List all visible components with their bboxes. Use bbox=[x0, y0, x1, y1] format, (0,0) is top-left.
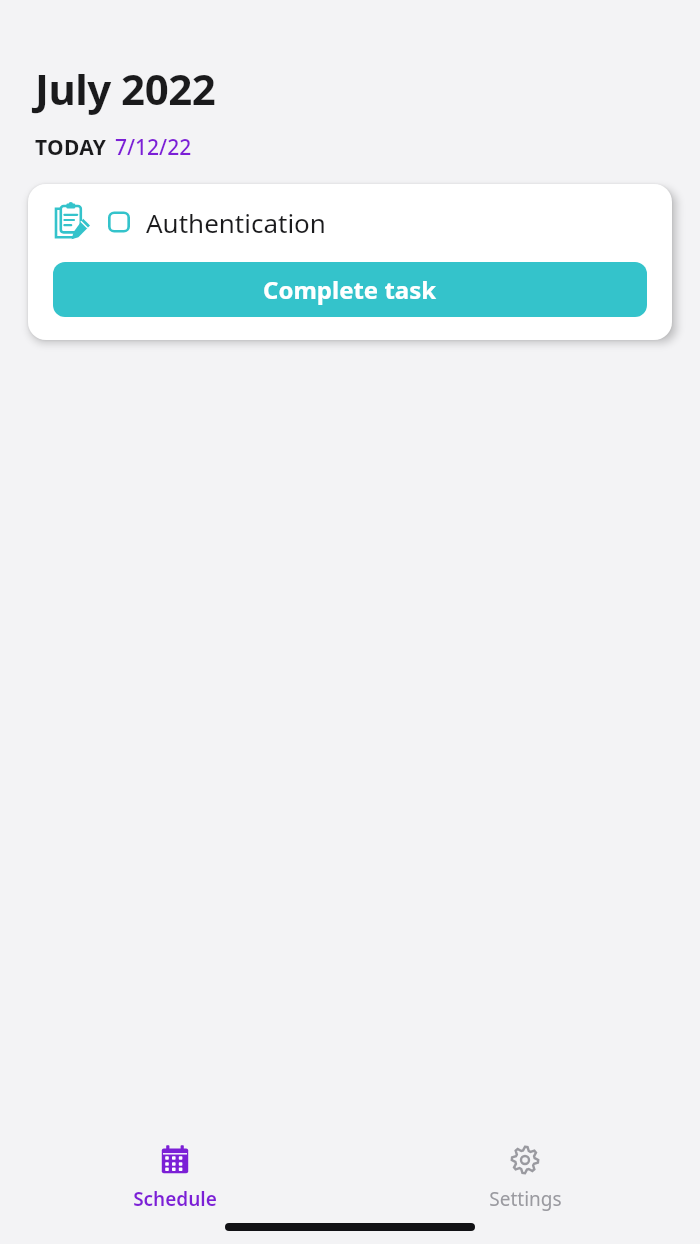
staticText: Complete task bbox=[263, 273, 437, 306]
staticText: Schedule bbox=[133, 1186, 217, 1212]
staticText: TODAY bbox=[35, 133, 107, 162]
button[interactable]: Task bbox=[28, 184, 672, 340]
staticText: Settings bbox=[489, 1186, 562, 1212]
button[interactable]: Complete task bbox=[53, 262, 647, 317]
other: Schedule bbox=[155, 1140, 195, 1180]
other: Settings bbox=[505, 1140, 545, 1180]
staticText: Authentication bbox=[146, 205, 326, 240]
staticText: 7/12/22 bbox=[115, 133, 192, 162]
staticText: July 2022 bbox=[35, 60, 216, 117]
button[interactable] bbox=[108, 211, 130, 233]
button[interactable]: Settings bbox=[350, 1134, 700, 1218]
button[interactable]: Schedule bbox=[0, 1134, 350, 1218]
other: Task bbox=[52, 202, 92, 242]
